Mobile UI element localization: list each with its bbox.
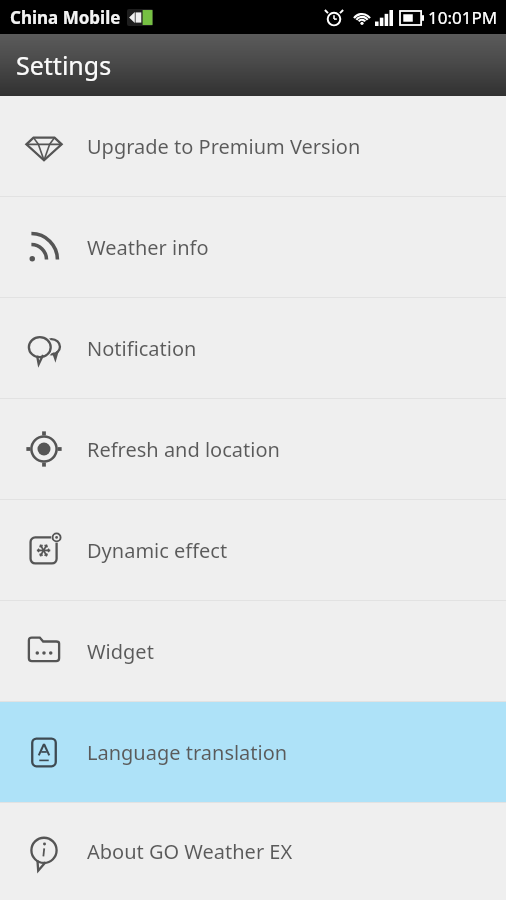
staticText: Dynamic effect (87, 537, 228, 564)
button[interactable]: Widget (0, 601, 506, 701)
button[interactable]: Language translation (0, 702, 506, 802)
staticText: Refresh and location (87, 436, 280, 463)
staticText: Language translation (87, 739, 288, 766)
staticText: Widget (87, 638, 154, 665)
staticText: 10:01PM (428, 6, 498, 29)
button[interactable]: Upgrade to Premium Version (0, 96, 506, 196)
staticText: Notification (87, 335, 197, 362)
staticText: Upgrade to Premium Version (87, 133, 361, 160)
button[interactable]: Refresh and location (0, 399, 506, 499)
staticText: Weather info (87, 234, 209, 261)
button[interactable]: Notification (0, 298, 506, 398)
button[interactable]: Weather info (0, 197, 506, 297)
staticText: Settings (16, 48, 112, 82)
staticText: About GO Weather EX (87, 838, 293, 865)
staticText: China Mobile (10, 6, 121, 29)
button[interactable]: About GO Weather EX (0, 803, 506, 900)
button[interactable]: Dynamic effect (0, 500, 506, 600)
